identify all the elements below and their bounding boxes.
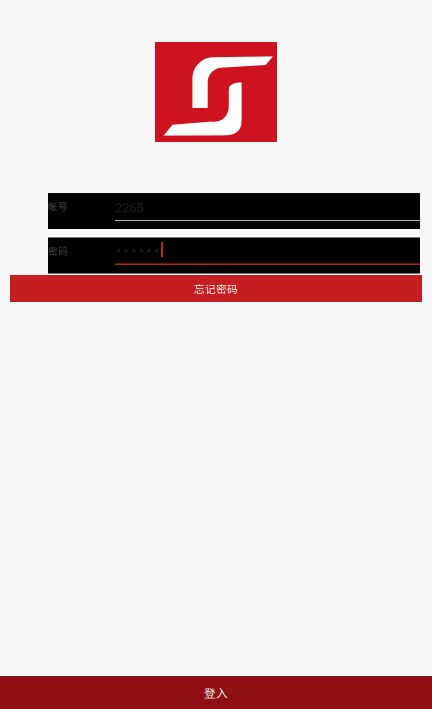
button[interactable]: 帐号 — [48, 193, 420, 229]
staticText: 登入 — [204, 684, 228, 701]
staticText: 忘记密码 — [194, 281, 238, 296]
button[interactable]: 密码 — [48, 237, 420, 273]
staticText: 2265 — [115, 200, 143, 216]
staticText: 密码 — [48, 243, 68, 257]
staticText: 帐号 — [48, 199, 68, 213]
button[interactable]: 忘记密码 — [10, 275, 422, 302]
button[interactable]: 登入 — [0, 676, 432, 709]
